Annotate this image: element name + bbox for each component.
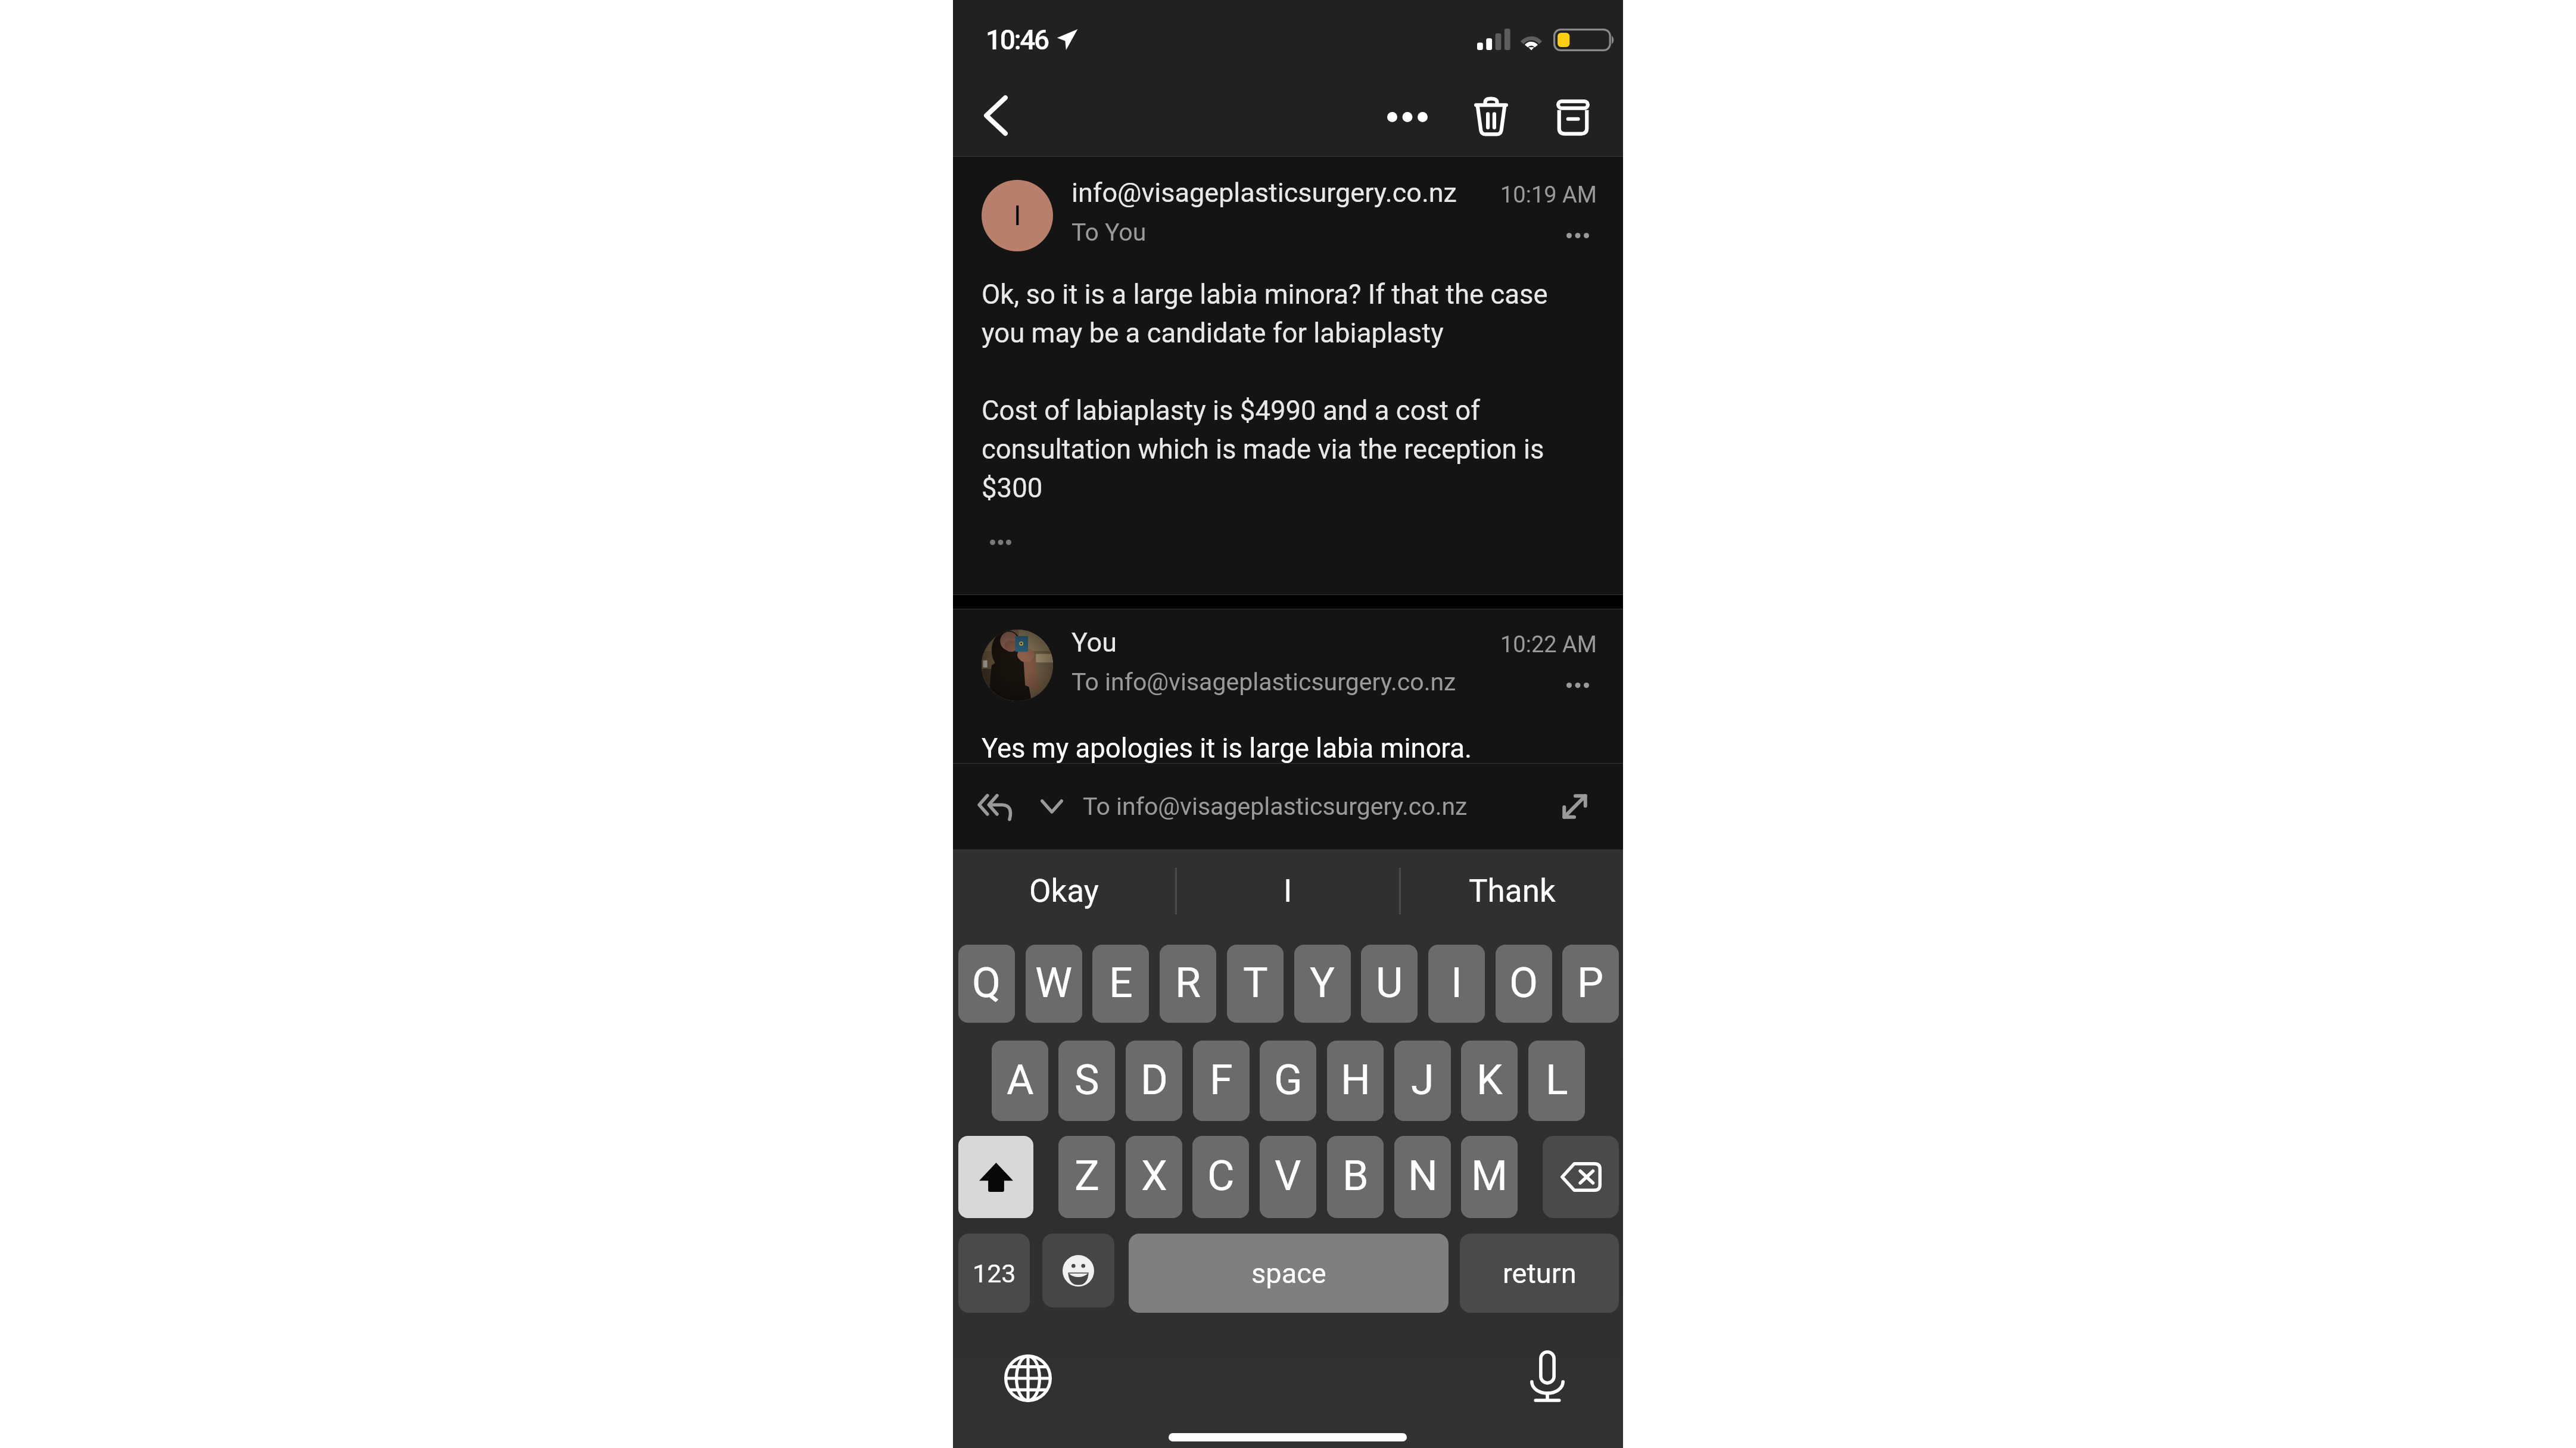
staticText: return — [1503, 1257, 1577, 1290]
staticText: To info@visageplasticsurgery.co.nz — [1071, 668, 1456, 696]
button[interactable]: Z — [1058, 1136, 1115, 1218]
button[interactable]: To info@visageplasticsurgery.co.nz — [1083, 770, 1535, 843]
button[interactable]: Okay — [953, 849, 1175, 929]
button[interactable]: Dictate — [1521, 1350, 1574, 1403]
button[interactable]: return — [1460, 1234, 1619, 1313]
button[interactable]: 123 — [958, 1234, 1030, 1313]
staticText: K — [1477, 1055, 1503, 1104]
button[interactable]: I — [1177, 849, 1399, 929]
staticText: S — [1074, 1055, 1099, 1104]
button[interactable]: Backspace — [1543, 1136, 1619, 1218]
staticText: H — [1341, 1055, 1370, 1104]
button[interactable]: Expand reply options — [1023, 777, 1081, 836]
button[interactable]: V — [1260, 1136, 1316, 1218]
staticText: L — [1546, 1055, 1568, 1104]
button[interactable]: Archive — [1543, 87, 1603, 147]
button[interactable]: I — [1428, 945, 1485, 1023]
staticText: To info@visageplasticsurgery.co.nz — [1083, 792, 1468, 821]
staticText: E — [1109, 958, 1133, 1007]
staticText: 123 — [973, 1259, 1016, 1288]
button[interactable]: Back — [966, 86, 1026, 145]
button[interactable]: Expand compose — [1546, 778, 1603, 835]
staticText: I — [1014, 200, 1021, 232]
staticText: Y — [1310, 958, 1335, 1007]
staticText: N — [1408, 1151, 1438, 1200]
staticText: P — [1577, 958, 1604, 1007]
staticText: 10:22 AM — [1500, 631, 1597, 658]
button[interactable]: Reply all — [966, 777, 1024, 836]
button[interactable]: Switch keyboard — [1001, 1352, 1055, 1405]
button[interactable]: H — [1327, 1041, 1384, 1121]
button[interactable]: Message options — [1549, 217, 1607, 253]
button[interactable]: More options — [1378, 87, 1437, 147]
staticText: X — [1141, 1151, 1167, 1200]
button[interactable]: X — [1126, 1136, 1182, 1218]
staticText: O — [1509, 958, 1538, 1007]
staticText: Q — [972, 958, 1001, 1007]
staticText: W — [1035, 958, 1073, 1007]
button[interactable]: A — [992, 1041, 1048, 1121]
button[interactable]: J — [1394, 1041, 1451, 1121]
staticText: J — [1411, 1055, 1434, 1104]
staticText: M — [1471, 1151, 1508, 1200]
button[interactable]: K — [1461, 1041, 1518, 1121]
button[interactable]: E — [1092, 945, 1149, 1023]
button[interactable]: Thank — [1401, 849, 1623, 929]
staticText: space — [1251, 1257, 1326, 1290]
staticText: A — [1007, 1055, 1034, 1104]
staticText: 10:19 AM — [1500, 182, 1597, 208]
staticText: To You — [1071, 218, 1147, 247]
staticText: U — [1376, 958, 1403, 1007]
staticText: G — [1274, 1055, 1303, 1104]
staticText: V — [1275, 1151, 1301, 1200]
staticText: info@visageplasticsurgery.co.nz — [1071, 177, 1457, 208]
button[interactable]: Show trimmed content — [977, 527, 1024, 557]
button[interactable]: Emoji — [1042, 1234, 1114, 1307]
staticText: Ok, so it is a large labia minora? If th… — [982, 279, 1548, 505]
button[interactable]: T — [1227, 945, 1284, 1023]
button[interactable]: B — [1327, 1136, 1384, 1218]
button[interactable]: R — [1160, 945, 1216, 1023]
button[interactable]: C — [1192, 1136, 1249, 1218]
staticText: T — [1243, 958, 1268, 1007]
button[interactable]: W — [1026, 945, 1082, 1023]
staticText: You — [1071, 627, 1117, 658]
button[interactable]: Message options — [1549, 667, 1607, 703]
button[interactable]: D — [1126, 1041, 1182, 1121]
staticText: I — [1284, 873, 1292, 910]
button[interactable]: Q — [958, 945, 1015, 1023]
button[interactable]: Y — [1294, 945, 1351, 1023]
staticText: I — [1451, 958, 1463, 1007]
button[interactable]: L — [1528, 1041, 1585, 1121]
staticText: 10:46 — [986, 24, 1048, 56]
staticText: F — [1210, 1055, 1233, 1104]
staticText: Yes my apologies it is large labia minor… — [982, 733, 1472, 764]
button[interactable]: Shift — [958, 1136, 1033, 1218]
staticText: Z — [1074, 1151, 1099, 1200]
button[interactable]: space — [1129, 1234, 1449, 1313]
button[interactable]: P — [1562, 945, 1619, 1023]
button[interactable]: G — [1260, 1041, 1316, 1121]
button[interactable]: Delete — [1461, 86, 1521, 146]
staticText: D — [1141, 1055, 1168, 1104]
staticText: Okay — [1029, 873, 1099, 910]
button[interactable]: O — [1496, 945, 1552, 1023]
button[interactable]: U — [1361, 945, 1418, 1023]
staticText: B — [1342, 1151, 1369, 1200]
button[interactable]: N — [1394, 1136, 1451, 1218]
staticText: C — [1207, 1151, 1235, 1200]
button[interactable]: M — [1461, 1136, 1518, 1218]
button[interactable]: F — [1193, 1041, 1250, 1121]
button[interactable]: S — [1058, 1041, 1115, 1121]
staticText: Thank — [1469, 873, 1556, 910]
staticText: R — [1175, 958, 1201, 1007]
